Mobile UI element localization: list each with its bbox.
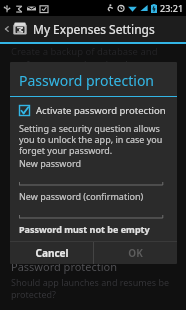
- staticText: preferences on the sdcard.: [11, 58, 131, 71]
- staticText: Should app launches and resumes be: [11, 276, 169, 288]
- button[interactable]: Password field: [19, 215, 168, 219]
- staticText: New password: [19, 157, 81, 169]
- staticText: New password (confirmation): [19, 190, 144, 202]
- button[interactable]: Cancel: [10, 242, 93, 264]
- staticText: Password must not be empty: [19, 223, 150, 235]
- staticText: Password protection: [11, 259, 118, 274]
- staticText: protected?: [11, 288, 56, 300]
- other: Up: [3, 18, 11, 40]
- staticText: Setting a security question allows you t…: [19, 122, 168, 156]
- staticText: OK: [128, 246, 143, 260]
- button[interactable]: OK: [94, 242, 177, 264]
- staticText: 23:21: [160, 2, 184, 14]
- staticText: My Expenses Settings: [33, 21, 155, 37]
- button[interactable]: Up: [0, 16, 186, 42]
- staticText: Activate password protection: [36, 104, 166, 117]
- button[interactable]: Activate password protection checkbox: [19, 104, 168, 117]
- button[interactable]: Password field: [19, 182, 168, 186]
- staticText: Cancel: [35, 246, 69, 260]
- staticText: Password protection: [19, 71, 155, 90]
- other: Activate password protection checkbox: [19, 105, 30, 116]
- staticText: Create a backup of database and: [11, 45, 158, 58]
